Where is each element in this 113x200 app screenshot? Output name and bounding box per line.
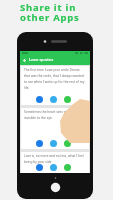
button[interactable]: Share on Twitter [50, 164, 57, 171]
staticText: Sometimes the heart sees what is invisib… [24, 110, 85, 120]
button[interactable]: Share on Twitter [50, 140, 57, 147]
staticText: Love quotes [29, 57, 54, 63]
button[interactable]: Share on WhatsApp [64, 140, 71, 147]
button[interactable]: The first time I saw your smile I knew t… [21, 66, 89, 105]
staticText: The first time I saw your smile I knew t… [24, 68, 85, 90]
staticText: Share it in other Apps [20, 1, 80, 24]
button[interactable]: Back [20, 55, 29, 65]
button[interactable]: Share on Facebook [36, 96, 43, 103]
button[interactable]: Share on Twitter [50, 96, 57, 103]
button[interactable]: Love is, no more and no less, what I fee… [21, 152, 89, 173]
staticText: Love is, no more and no less, what I fee… [24, 154, 85, 164]
button[interactable]: Share on Facebook [36, 164, 43, 171]
button[interactable]: Share on WhatsApp [64, 96, 71, 103]
button[interactable]: Sometimes the heart sees what is invisib… [21, 108, 89, 149]
button[interactable]: Share on WhatsApp [64, 164, 71, 171]
button[interactable]: Share on Facebook [36, 140, 43, 147]
